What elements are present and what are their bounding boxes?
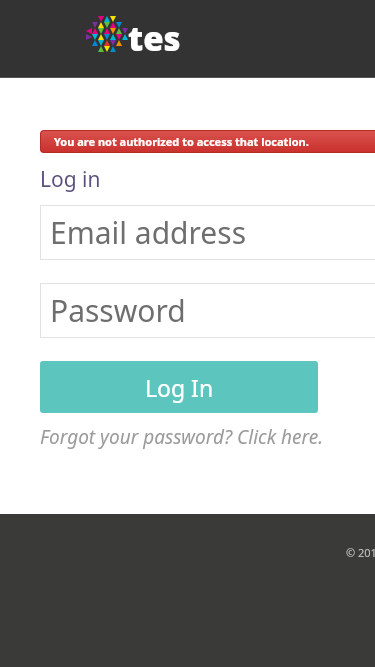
button[interactable]: Log In bbox=[40, 361, 318, 413]
button[interactable]: tes home bbox=[84, 14, 196, 50]
button[interactable]: Forgot your password? Click here. bbox=[40, 422, 375, 452]
staticText: Log In bbox=[145, 372, 214, 403]
button[interactable]: Password bbox=[40, 283, 375, 338]
staticText: Email address bbox=[50, 212, 247, 253]
staticText: © 2017 TES Global Ltd bbox=[346, 545, 375, 560]
staticText: Password bbox=[50, 290, 186, 331]
staticText: Log in bbox=[40, 165, 101, 194]
button[interactable]: You are not authorized to access that lo… bbox=[40, 130, 375, 153]
staticText: tes bbox=[128, 16, 181, 52]
button[interactable]: Email address bbox=[40, 205, 375, 260]
staticText: You are not authorized to access that lo… bbox=[54, 134, 309, 149]
staticText: Forgot your password? Click here. bbox=[40, 424, 324, 450]
